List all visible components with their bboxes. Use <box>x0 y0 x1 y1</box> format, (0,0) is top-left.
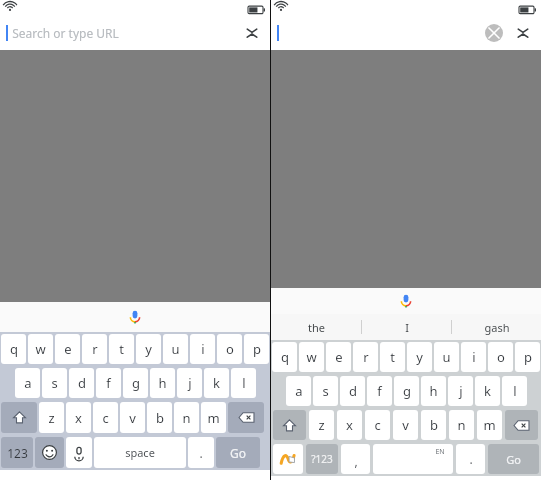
button[interactable]: d <box>340 376 365 406</box>
staticText: t <box>119 340 124 358</box>
staticText: I <box>405 320 409 335</box>
button[interactable]: d <box>69 368 94 398</box>
staticText: gash <box>484 320 510 335</box>
button[interactable]: g <box>123 368 148 398</box>
staticText: 123 <box>7 445 28 461</box>
button[interactable]: . <box>456 444 485 474</box>
button[interactable]: p <box>515 342 540 372</box>
button[interactable]: EN <box>373 444 453 474</box>
staticText: , <box>354 453 358 469</box>
staticText: Go <box>506 452 521 467</box>
button[interactable]: m <box>477 410 502 440</box>
button[interactable]: Emoji <box>35 437 64 468</box>
button[interactable]: r <box>353 342 378 372</box>
staticText: x <box>346 416 353 434</box>
button[interactable]: I <box>362 314 451 340</box>
button[interactable]: Go <box>216 437 260 468</box>
staticText: z <box>48 409 55 427</box>
button[interactable]: u <box>163 334 188 364</box>
button[interactable]: Clear <box>483 22 505 44</box>
button[interactable]: y <box>136 334 161 364</box>
button[interactable]: l <box>502 376 527 406</box>
button[interactable]: p <box>244 334 269 364</box>
staticText: g <box>132 374 140 392</box>
button[interactable]: m <box>201 402 226 433</box>
button[interactable]: e <box>55 334 80 364</box>
button[interactable]: u <box>434 342 459 372</box>
button[interactable]: s <box>313 376 338 406</box>
button[interactable]: Shift <box>1 402 37 433</box>
button[interactable]: Shift <box>273 410 306 440</box>
button[interactable]: Collapse <box>511 21 535 45</box>
button[interactable]: y <box>407 342 432 372</box>
button[interactable]: f <box>367 376 392 406</box>
button[interactable]: Voice search <box>396 291 416 311</box>
button[interactable]: space <box>94 437 186 468</box>
staticText: b <box>156 409 164 427</box>
staticText: f <box>106 374 111 392</box>
button[interactable]: g <box>394 376 419 406</box>
staticText: l <box>242 374 246 392</box>
staticText: u <box>442 348 451 366</box>
button[interactable]: c <box>365 410 390 440</box>
button[interactable]: i <box>461 342 486 372</box>
button[interactable]: Glide typing <box>273 444 303 474</box>
button[interactable]: h <box>421 376 446 406</box>
button[interactable]: the <box>271 314 361 340</box>
staticText: o <box>497 348 505 366</box>
button[interactable]: x <box>66 402 91 433</box>
staticText: m <box>483 416 496 434</box>
button[interactable]: i <box>190 334 215 364</box>
button[interactable]: w <box>299 342 324 372</box>
staticText: c <box>102 409 109 427</box>
button[interactable]: q <box>1 334 26 364</box>
button[interactable]: a <box>15 368 40 398</box>
button[interactable]: e <box>326 342 351 372</box>
button[interactable]: z <box>39 402 64 433</box>
button[interactable]: k <box>204 368 229 398</box>
button[interactable]: o <box>217 334 242 364</box>
button[interactable]: s <box>42 368 67 398</box>
button[interactable]: gash <box>452 314 541 340</box>
button[interactable]: j <box>177 368 202 398</box>
button[interactable]: , <box>341 444 370 474</box>
staticText: h <box>429 382 438 400</box>
button[interactable]: q <box>272 342 297 372</box>
button[interactable]: o <box>488 342 513 372</box>
button[interactable]: n <box>174 402 199 433</box>
button[interactable]: c <box>93 402 118 433</box>
button[interactable]: l <box>231 368 256 398</box>
button[interactable]: k <box>475 376 500 406</box>
staticText: k <box>484 382 491 400</box>
staticText: o <box>226 340 234 358</box>
button[interactable]: t <box>380 342 405 372</box>
staticText: q <box>10 340 18 358</box>
button[interactable]: z <box>309 410 334 440</box>
button[interactable]: ?123 <box>306 444 338 474</box>
button[interactable]: b <box>147 402 172 433</box>
button[interactable]: v <box>393 410 418 440</box>
button[interactable]: r <box>82 334 107 364</box>
button[interactable]: a <box>286 376 311 406</box>
button[interactable]: . <box>188 437 214 468</box>
staticText: w <box>35 340 46 358</box>
button[interactable]: Backspace <box>228 402 264 433</box>
button[interactable]: Voice search <box>125 307 145 327</box>
button[interactable]: Go <box>488 444 539 474</box>
staticText: . <box>199 445 203 461</box>
button[interactable]: Backspace <box>505 410 538 440</box>
staticText: Go <box>230 445 246 461</box>
button[interactable]: x <box>337 410 362 440</box>
button[interactable]: f <box>96 368 121 398</box>
button[interactable]: Voice input <box>66 437 92 468</box>
button[interactable]: n <box>449 410 474 440</box>
button[interactable]: t <box>109 334 134 364</box>
button[interactable]: w <box>28 334 53 364</box>
button[interactable]: Collapse <box>240 21 264 45</box>
button[interactable]: h <box>150 368 175 398</box>
button[interactable]: b <box>421 410 446 440</box>
staticText: l <box>513 382 517 400</box>
button[interactable]: j <box>448 376 473 406</box>
button[interactable]: v <box>120 402 145 433</box>
button[interactable]: 123 <box>1 437 33 468</box>
